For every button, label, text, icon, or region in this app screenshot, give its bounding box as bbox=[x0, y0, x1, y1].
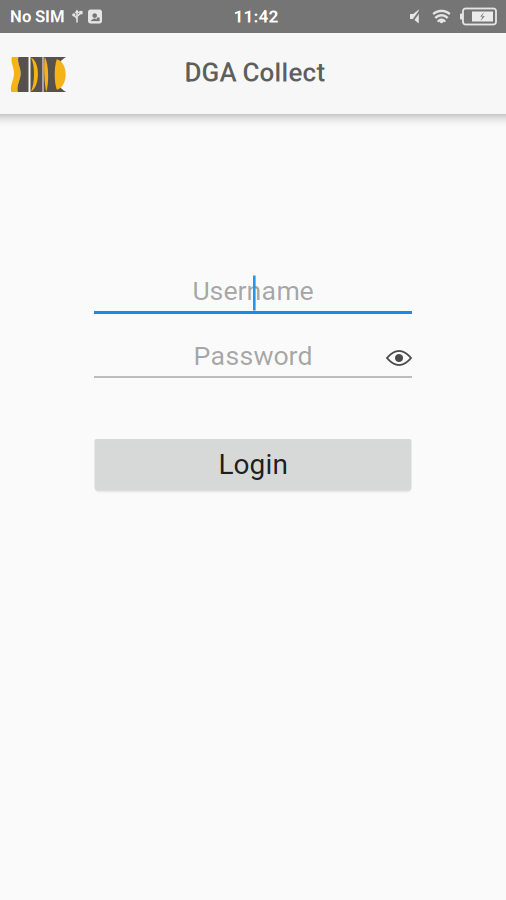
staticText: DGA Collect bbox=[184, 57, 325, 88]
staticText: Password bbox=[193, 340, 312, 372]
staticText: Username bbox=[192, 275, 313, 307]
button[interactable]: Login bbox=[94, 439, 411, 490]
staticText: 11:42 bbox=[233, 6, 278, 27]
staticText: Login bbox=[218, 448, 287, 481]
button[interactable]: Username bbox=[94, 275, 412, 314]
staticText: No SIM bbox=[10, 7, 65, 26]
button[interactable]: Password bbox=[94, 340, 412, 378]
button[interactable]: Show password bbox=[384, 340, 414, 376]
